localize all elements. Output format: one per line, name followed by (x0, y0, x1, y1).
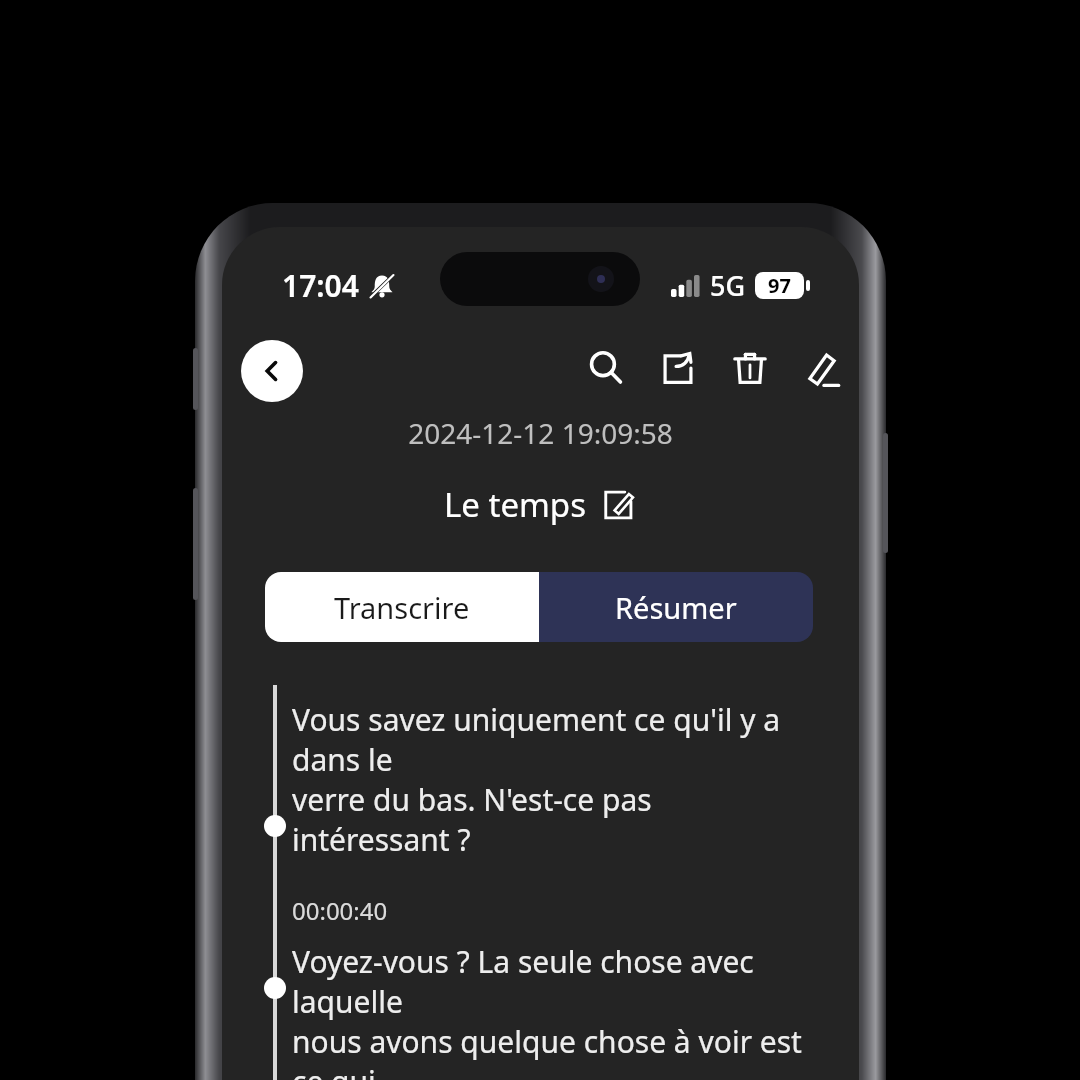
button[interactable]: Search (577, 339, 635, 397)
staticText: Vous savez uniquement ce qu'il y a dans … (292, 699, 812, 860)
staticText: 5G (710, 267, 746, 304)
button[interactable]: Résumer (539, 572, 813, 642)
staticText: Résumer (615, 588, 737, 627)
staticText: Voyez-vous ? La seule chose avec laquell… (292, 941, 812, 1080)
button[interactable]: Edit (793, 339, 851, 397)
button[interactable]: Share (649, 339, 707, 397)
staticText: 17:04 (282, 265, 359, 306)
button[interactable]: Delete (721, 339, 779, 397)
staticText: Transcrire (334, 588, 470, 627)
button[interactable]: Back (241, 340, 303, 402)
staticText: 2024-12-12 19:09:58 (222, 414, 859, 452)
staticText: Le temps (444, 482, 586, 527)
staticText: 00:00:40 (292, 894, 388, 927)
button[interactable]: Transcrire (265, 572, 539, 642)
staticText: 97 (768, 272, 791, 299)
button[interactable]: Rename (598, 485, 638, 525)
